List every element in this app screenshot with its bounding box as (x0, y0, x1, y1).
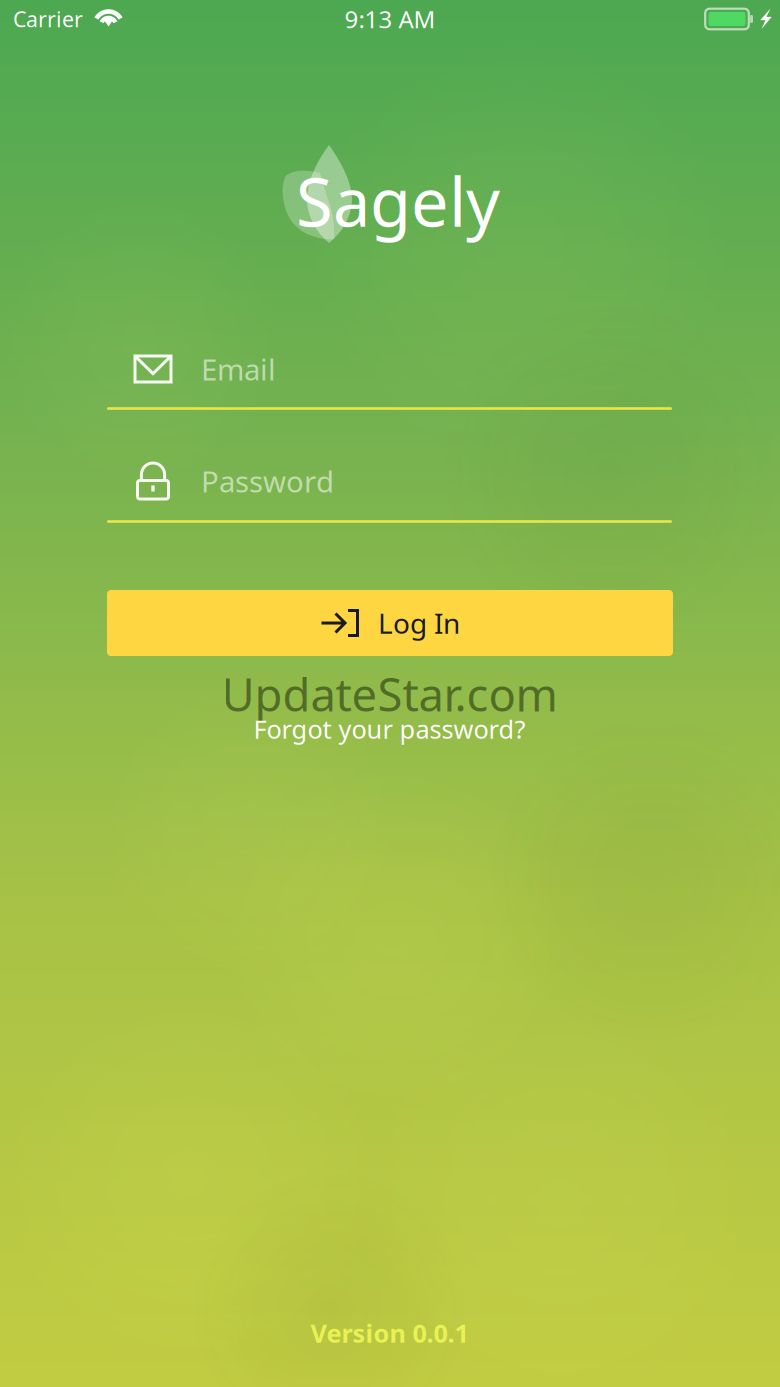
staticText: Version 0.0.1 (310, 1316, 468, 1350)
staticText: Email (201, 349, 276, 388)
staticText: Password (201, 461, 334, 500)
button[interactable]: Log In (107, 590, 673, 656)
staticText: Log In (378, 604, 460, 642)
staticText: UpdateStar.com (221, 664, 557, 724)
staticText: Forgot your password? (253, 712, 525, 746)
button[interactable]: Forgot your password? (107, 710, 672, 748)
staticText: Carrier (13, 5, 83, 33)
staticText: 9:13 AM (344, 3, 435, 35)
staticText: Sagely (296, 157, 500, 245)
